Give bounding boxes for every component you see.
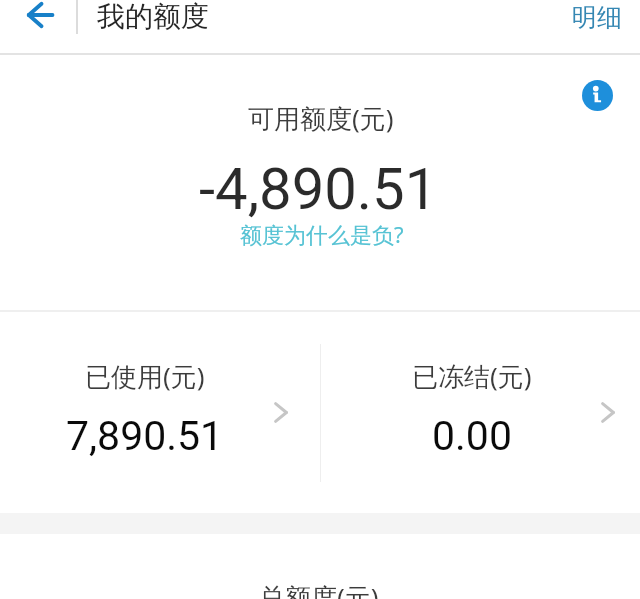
staticText: 0.00: [432, 412, 512, 460]
staticText: 7,890.51: [66, 412, 224, 460]
button[interactable]: Info: [582, 80, 613, 111]
button[interactable]: 明细: [557, 0, 637, 39]
button[interactable]: 已使用(元): [0, 312, 320, 513]
button[interactable]: 已冻结(元): [320, 312, 640, 513]
staticText: 可用额度(元): [248, 100, 394, 136]
staticText: 已使用(元): [85, 358, 205, 394]
staticText: 额度为什么是负?: [240, 219, 404, 249]
button[interactable]: 额度为什么是负?: [229, 213, 415, 255]
staticText: 总额度(元): [259, 579, 379, 599]
button[interactable]: Back: [4, 0, 76, 38]
staticText: 明细: [572, 2, 622, 33]
staticText: 已冻结(元): [412, 358, 532, 394]
staticText: 我的额度: [97, 0, 209, 34]
staticText: -4,890.51: [199, 155, 438, 223]
